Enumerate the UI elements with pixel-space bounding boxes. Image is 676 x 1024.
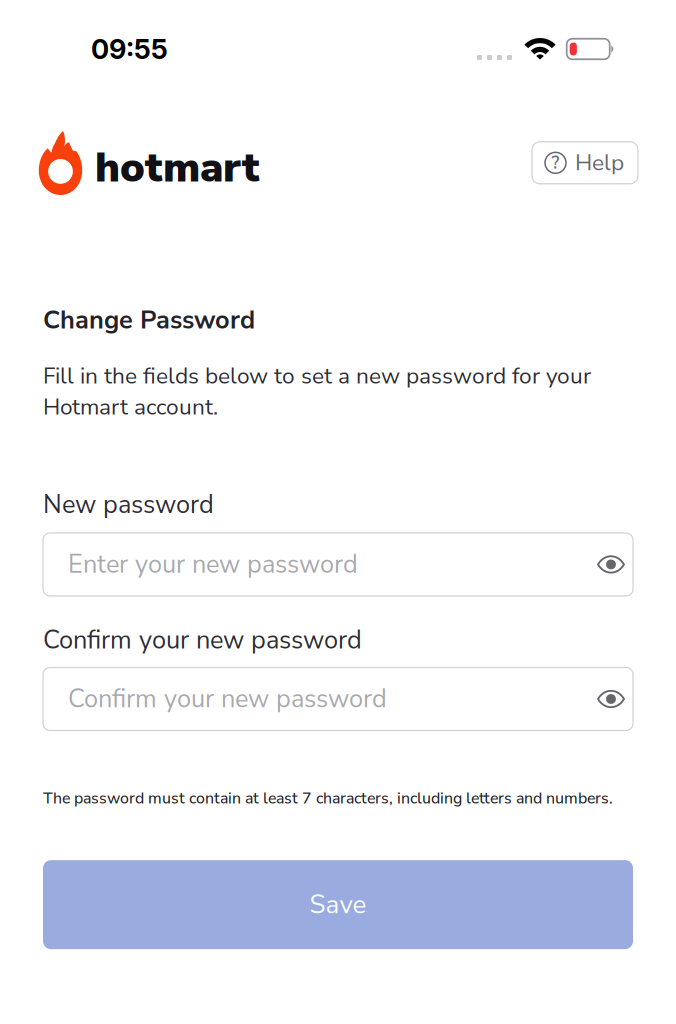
staticText: ? — [551, 151, 559, 175]
staticText: Help — [575, 147, 624, 178]
staticText: Confirm your new password — [68, 682, 387, 716]
staticText: New password — [43, 487, 214, 522]
staticText: hotmart — [95, 140, 260, 196]
button[interactable]: Enter your new password — [43, 533, 633, 596]
staticText: The password must contain at least 7 cha… — [43, 787, 613, 809]
button[interactable]: Show password — [587, 667, 633, 730]
button[interactable]: Save — [43, 860, 633, 949]
button[interactable]: Show password — [587, 533, 633, 596]
staticText: 09:55 — [91, 32, 168, 66]
button[interactable]: Confirm your new password — [43, 667, 633, 730]
staticText: Enter your new password — [68, 547, 358, 582]
staticText: Confirm your new password — [43, 623, 362, 657]
button[interactable]: ? — [532, 142, 638, 184]
staticText: Save — [309, 887, 366, 922]
staticText: Change Password — [43, 303, 255, 338]
staticText: Fill in the fields below to set a new pa… — [43, 361, 591, 422]
